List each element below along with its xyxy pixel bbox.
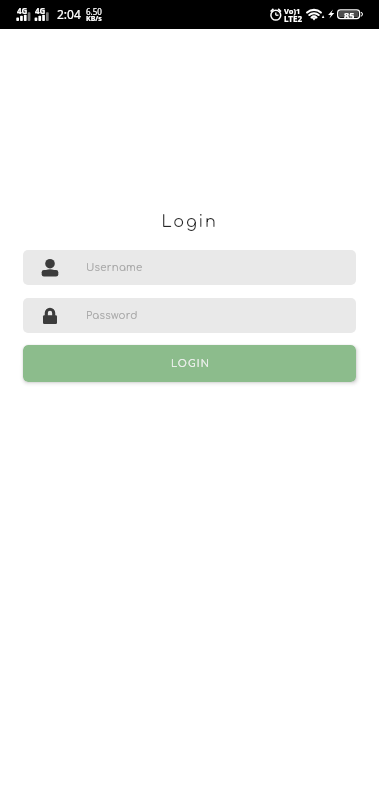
staticText: 4G bbox=[35, 5, 46, 16]
staticText: LTE2 bbox=[284, 13, 302, 24]
staticText: Password bbox=[86, 310, 138, 321]
staticText: 4G bbox=[17, 5, 28, 16]
staticText: LOGIN bbox=[171, 358, 211, 369]
staticText: Login bbox=[0, 213, 379, 231]
staticText: Username bbox=[86, 262, 143, 273]
staticText: 6.50 bbox=[86, 6, 102, 17]
staticText: 85 bbox=[344, 9, 355, 21]
button[interactable]: Password bbox=[23, 298, 356, 333]
button[interactable]: LOGIN bbox=[23, 345, 356, 382]
button[interactable]: Username bbox=[23, 250, 356, 285]
staticText: KB/s bbox=[86, 14, 102, 24]
staticText: Vo)1 bbox=[284, 6, 301, 16]
staticText: 2:04 bbox=[57, 6, 81, 22]
